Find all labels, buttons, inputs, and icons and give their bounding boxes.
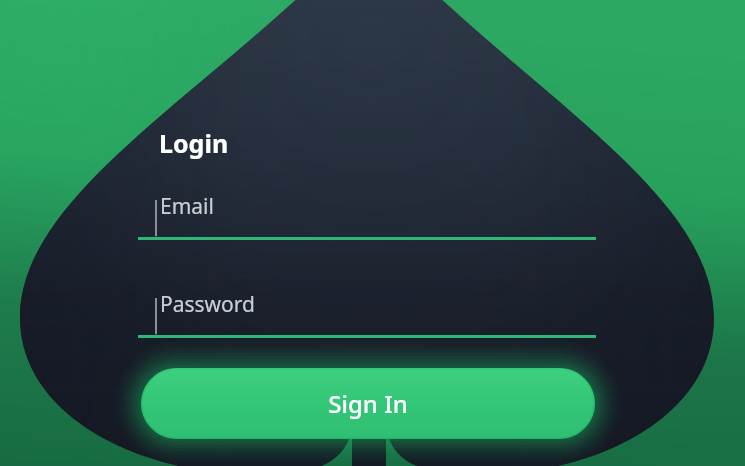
staticText: Login <box>159 126 229 160</box>
staticText: Password <box>160 290 255 319</box>
button[interactable]: Password <box>138 284 596 338</box>
staticText: Sign In <box>328 387 408 420</box>
button[interactable]: Email <box>138 186 596 240</box>
button[interactable]: Sign In <box>141 368 595 439</box>
staticText: Email <box>160 192 214 221</box>
